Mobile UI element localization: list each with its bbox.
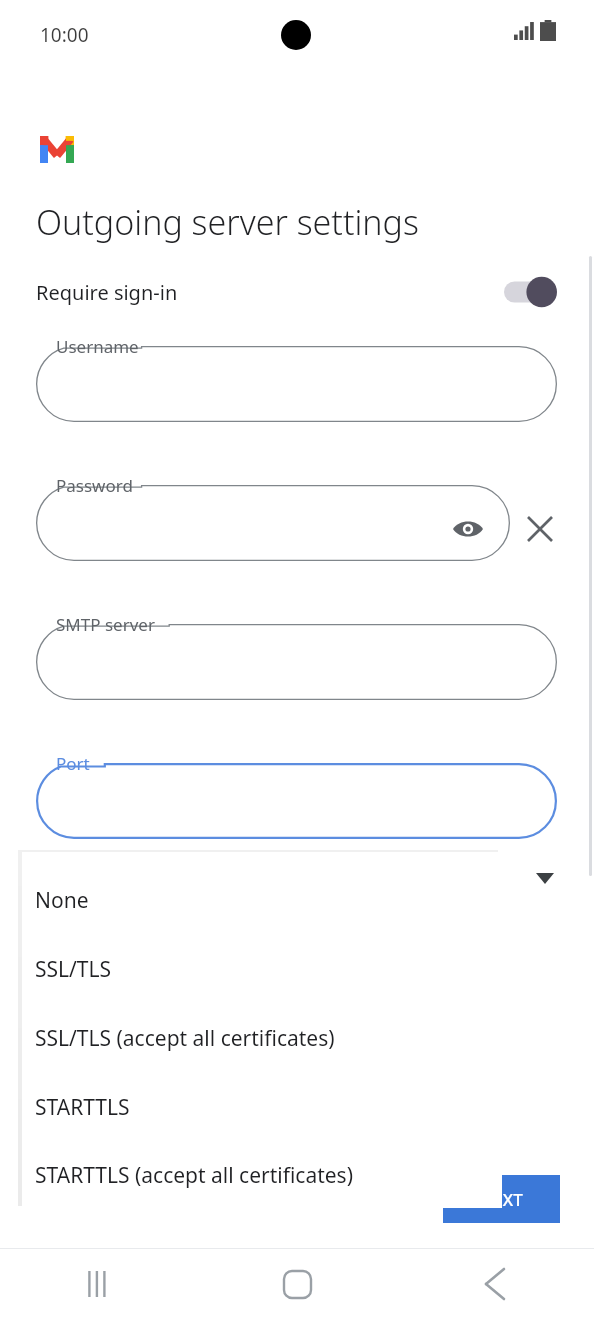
button[interactable]: Security type: [0, 857, 594, 917]
staticText: SSL/TLS: [35, 955, 112, 984]
staticText: Port: [56, 752, 90, 775]
staticText: Require sign-in: [36, 279, 178, 306]
staticText: SMTP server: [56, 613, 155, 636]
button[interactable]: Home: [198, 1248, 396, 1320]
staticText: STARTTLS (accept all certificates): [35, 1161, 353, 1190]
button[interactable]: SSL/TLS (accept all certificates): [22, 1004, 502, 1073]
staticText: 10:00: [40, 22, 89, 48]
staticText: SSL/TLS (accept all certificates): [35, 1024, 335, 1053]
staticText: Outgoing server settings: [36, 199, 419, 245]
button[interactable]: Require sign-in: [0, 267, 594, 317]
button[interactable]: STARTTLS: [22, 1073, 502, 1142]
button[interactable]: [36, 485, 510, 561]
button[interactable]: Back: [396, 1248, 594, 1320]
button[interactable]: [36, 763, 557, 839]
button[interactable]: [36, 624, 557, 700]
staticText: NEXT: [480, 1188, 523, 1211]
staticText: Password: [56, 474, 133, 497]
button[interactable]: Recent apps: [0, 1248, 198, 1320]
button[interactable]: Clear password: [518, 507, 562, 551]
staticText: STARTTLS: [35, 1093, 130, 1122]
staticText: None: [35, 886, 89, 915]
button[interactable]: NEXT: [443, 1175, 560, 1223]
staticText: Username: [56, 335, 139, 358]
button[interactable]: None: [22, 866, 502, 935]
button[interactable]: Require sign-in toggle: [504, 275, 558, 309]
button[interactable]: [36, 346, 557, 422]
button[interactable]: Show password: [448, 509, 488, 549]
button[interactable]: SSL/TLS: [22, 935, 502, 1004]
button[interactable]: STARTTLS (accept all certificates): [22, 1142, 502, 1208]
